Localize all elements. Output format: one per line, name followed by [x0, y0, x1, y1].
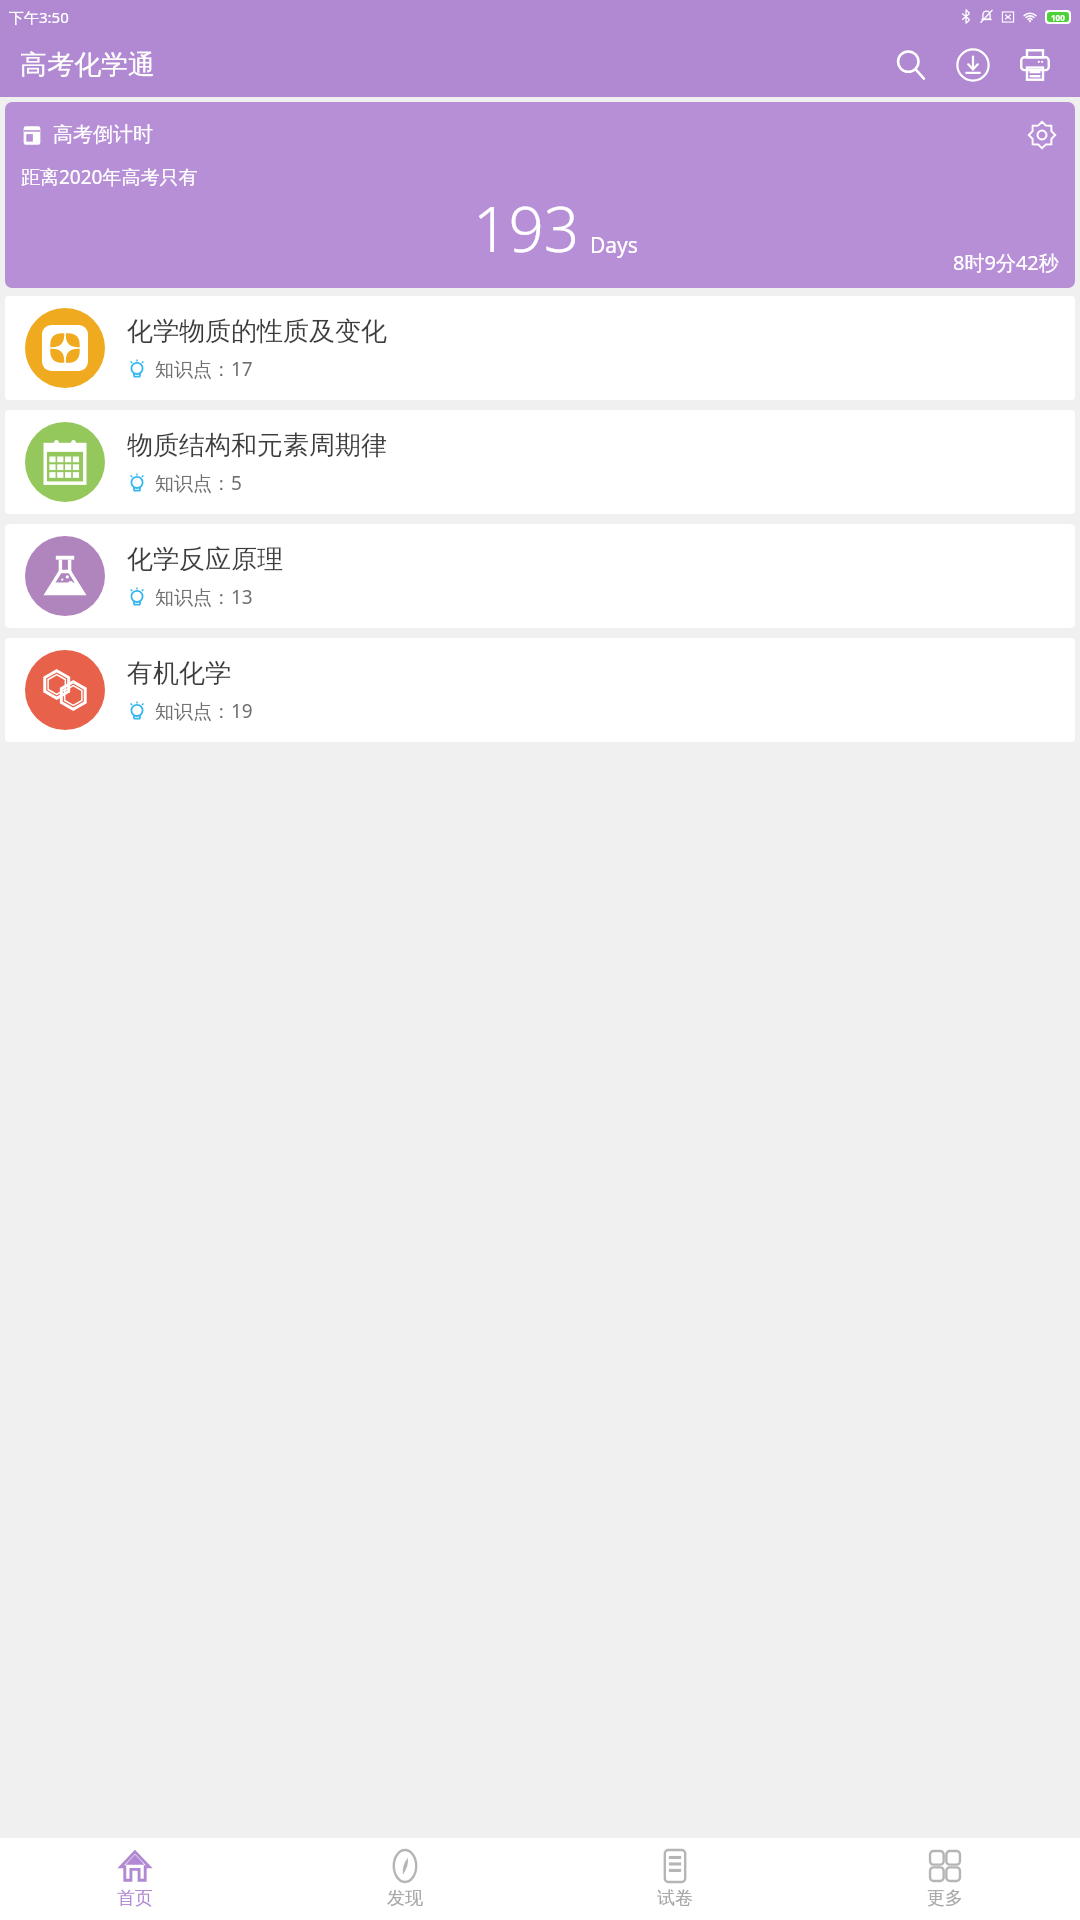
staticText: 物质结构和元素周期律 — [127, 429, 387, 462]
staticText: 知识点：5 — [155, 470, 242, 496]
button[interactable]: 高考倒计时 — [5, 102, 1075, 288]
button[interactable]: 首页 — [0, 1838, 270, 1920]
staticText: 距离2020年高考只有 — [21, 164, 198, 190]
staticText: 试卷 — [657, 1887, 693, 1910]
staticText: 知识点：13 — [155, 584, 253, 610]
staticText: 化学反应原理 — [127, 543, 283, 576]
button[interactable]: 有机化学 — [5, 638, 1075, 742]
staticText: 100 — [1051, 12, 1065, 22]
staticText: Days — [590, 231, 638, 260]
button[interactable]: 化学物质的性质及变化 — [5, 296, 1075, 400]
staticText: 8时9分42秒 — [953, 249, 1059, 276]
button[interactable]: 物质结构和元素周期律 — [5, 410, 1075, 514]
button[interactable]: 化学反应原理 — [5, 524, 1075, 628]
staticText: 化学物质的性质及变化 — [127, 315, 387, 348]
staticText: 高考倒计时 — [53, 122, 153, 147]
staticText: 知识点：19 — [155, 698, 253, 724]
button[interactable]: Search — [880, 34, 942, 96]
staticText: 发现 — [387, 1887, 423, 1910]
staticText: 知识点：17 — [155, 356, 253, 382]
button[interactable]: Settings — [1025, 118, 1059, 152]
button[interactable]: Print — [1004, 34, 1066, 96]
staticText: 更多 — [927, 1887, 963, 1910]
button[interactable]: Download — [942, 34, 1004, 96]
staticText: 下午3:50 — [9, 7, 69, 27]
staticText: 193 — [473, 186, 580, 270]
button[interactable]: 发现 — [270, 1838, 540, 1920]
button[interactable]: 试卷 — [540, 1838, 810, 1920]
staticText: 有机化学 — [127, 657, 231, 690]
staticText: 高考化学通 — [20, 48, 155, 82]
button[interactable]: 更多 — [810, 1838, 1080, 1920]
staticText: 首页 — [117, 1887, 153, 1910]
